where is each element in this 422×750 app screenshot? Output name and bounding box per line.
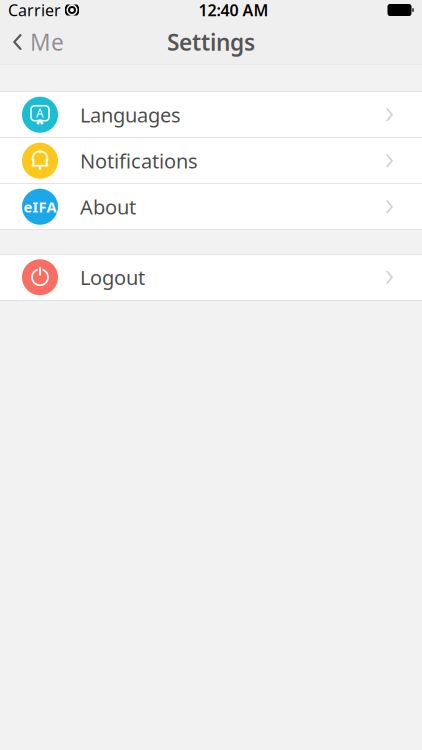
staticText: Me <box>30 27 64 57</box>
button[interactable]: Notifications <box>0 137 422 183</box>
staticText: Settings <box>167 27 255 57</box>
staticText: Notifications <box>80 147 198 174</box>
staticText: Logout <box>80 264 145 291</box>
button[interactable]: A <box>0 91 422 137</box>
staticText: 12:40 AM <box>198 0 268 21</box>
button[interactable]: Me <box>0 20 74 64</box>
staticText: Carrier <box>8 0 61 21</box>
staticText: Languages <box>80 101 181 128</box>
staticText: eIFA <box>23 197 56 216</box>
button[interactable]: Logout <box>0 254 422 300</box>
staticText: About <box>80 193 136 220</box>
staticText: A <box>36 105 44 121</box>
button[interactable]: eIFA <box>0 183 422 229</box>
